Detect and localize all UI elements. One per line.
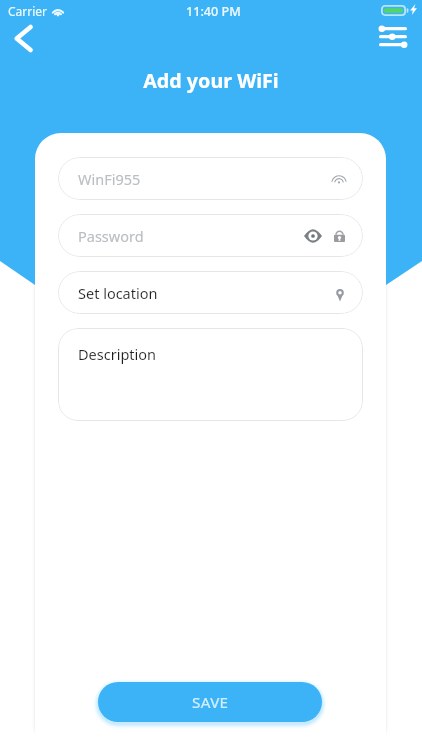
staticText: SAVE (192, 692, 229, 713)
button[interactable]: Set location (58, 271, 363, 314)
staticText: Carrier (8, 3, 48, 19)
staticText: Password (78, 226, 144, 246)
button[interactable]: Back (2, 20, 44, 62)
staticText: 11:40 PM (186, 3, 241, 20)
staticText: Add your WiFi (0, 67, 422, 94)
button[interactable]: Description (58, 328, 363, 421)
button[interactable]: SAVE (98, 682, 322, 722)
button[interactable]: Settings (374, 22, 412, 52)
button[interactable]: Password (58, 214, 363, 257)
staticText: Set location (78, 283, 158, 303)
staticText: Description (78, 344, 157, 364)
staticText: WinFi955 (78, 169, 141, 189)
button[interactable]: WinFi955 (58, 157, 363, 200)
